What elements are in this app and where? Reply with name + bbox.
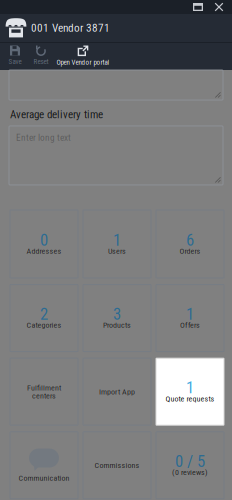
staticText: Enter long text bbox=[16, 132, 71, 143]
staticText: Categories bbox=[26, 320, 61, 330]
staticText: Quote requests bbox=[165, 394, 214, 403]
staticText: Offers bbox=[180, 320, 200, 330]
staticText: Commissions bbox=[94, 461, 139, 470]
staticText: Reset bbox=[33, 57, 48, 66]
staticText: Fulfillment bbox=[27, 383, 61, 392]
button[interactable]: 0 bbox=[10, 210, 78, 278]
staticText: Addresses bbox=[26, 246, 61, 256]
staticText: Orders bbox=[179, 246, 200, 256]
staticText: centers bbox=[32, 391, 56, 400]
button[interactable]: Reset bbox=[28, 43, 54, 69]
staticText: 1 bbox=[113, 230, 121, 250]
button[interactable]: 1 bbox=[83, 210, 151, 278]
button[interactable]: 0 / 5 bbox=[156, 432, 224, 499]
button[interactable]: 3 bbox=[83, 285, 151, 352]
staticText: Save bbox=[8, 57, 21, 66]
staticText: 2 bbox=[40, 304, 48, 324]
staticText: 3 bbox=[113, 304, 121, 324]
staticText: (0 reviews) bbox=[172, 468, 208, 477]
staticText: 001 Vendor 3871 bbox=[31, 21, 110, 35]
staticText: Open Vendor portal bbox=[56, 58, 109, 66]
button[interactable]: 2 bbox=[10, 285, 78, 352]
button[interactable]: 1 bbox=[156, 285, 224, 352]
button[interactable]: 1 bbox=[156, 358, 224, 425]
staticText: Communication bbox=[18, 473, 69, 483]
button[interactable]: Commissions bbox=[83, 432, 151, 499]
button[interactable]: Open Vendor portal bbox=[54, 43, 112, 69]
button[interactable]: Save bbox=[2, 43, 28, 69]
staticText: 0 / 5 bbox=[175, 451, 205, 471]
button[interactable]: Close window bbox=[209, 0, 229, 14]
staticText: Average delivery time bbox=[10, 108, 103, 121]
button[interactable]: Fulfillment bbox=[10, 358, 78, 425]
staticText: Users bbox=[108, 246, 126, 256]
staticText: 1 bbox=[186, 304, 194, 324]
staticText: 6 bbox=[186, 230, 194, 250]
staticText: 0 bbox=[40, 230, 48, 250]
button[interactable]: Communication bbox=[10, 432, 78, 499]
button[interactable]: Import App bbox=[83, 358, 151, 425]
staticText: 1 bbox=[186, 378, 194, 397]
button[interactable]: Restore window bbox=[187, 0, 209, 14]
staticText: Products bbox=[103, 320, 131, 330]
button[interactable]: 6 bbox=[156, 210, 224, 278]
staticText: Import App bbox=[99, 387, 135, 396]
